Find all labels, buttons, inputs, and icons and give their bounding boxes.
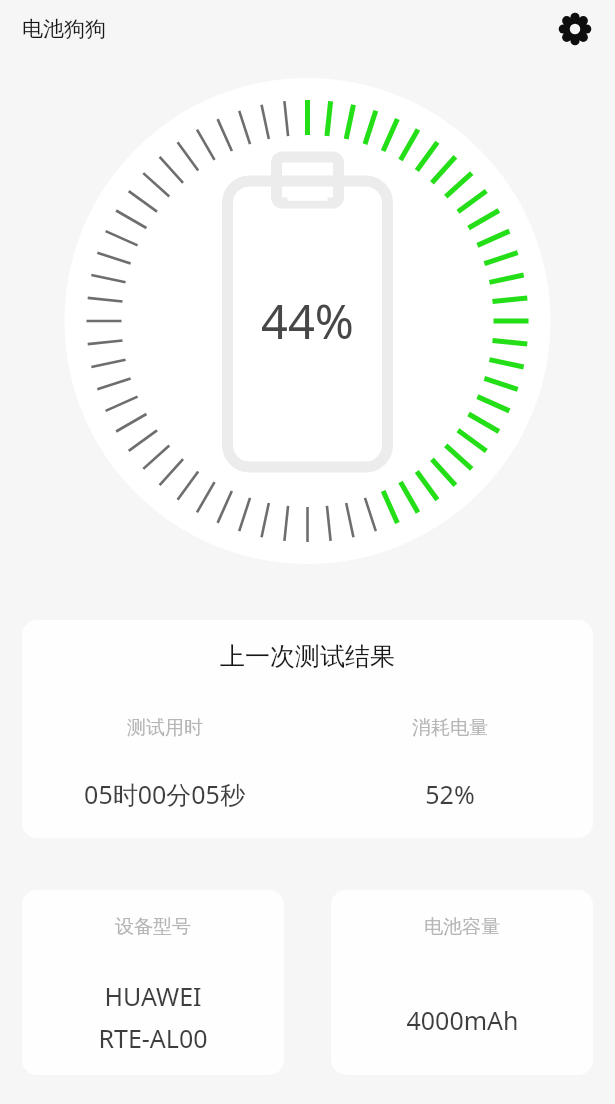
staticText: 电池狗狗 <box>22 16 106 42</box>
button[interactable]: 电池容量 <box>331 890 593 1075</box>
staticText: 设备型号 <box>115 915 191 939</box>
staticText: HUAWEI <box>104 979 202 1013</box>
staticText: 52% <box>425 777 475 811</box>
button[interactable]: Settings <box>552 6 598 52</box>
button[interactable]: 上一次测试结果 <box>22 620 593 838</box>
staticText: 05时00分05秒 <box>84 777 245 811</box>
button[interactable]: 设备型号 <box>22 890 284 1075</box>
staticText: RTE-AL00 <box>98 1021 208 1055</box>
staticText: 44% <box>261 289 354 353</box>
staticText: 上一次测试结果 <box>220 641 395 672</box>
staticText: 4000mAh <box>406 1003 519 1037</box>
staticText: 电池容量 <box>424 915 500 939</box>
staticText: 消耗电量 <box>412 716 488 740</box>
staticText: 测试用时 <box>127 716 203 740</box>
